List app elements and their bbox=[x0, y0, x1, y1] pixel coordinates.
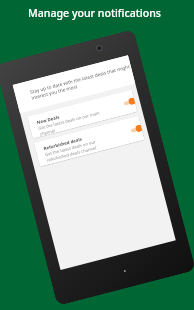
button[interactable]: New Deals bbox=[27, 89, 137, 139]
staticText: Get the latest deals on our refurbished … bbox=[45, 133, 121, 163]
button[interactable]: Notification toggle bbox=[129, 124, 142, 134]
button[interactable]: Stay up to date with the latest deals th… bbox=[13, 55, 135, 113]
staticText: Manage your notifications bbox=[28, 6, 161, 20]
staticText: Refurbished deals bbox=[43, 135, 83, 151]
button[interactable]: Refurbished deals bbox=[34, 116, 145, 167]
button[interactable]: Notification toggle bbox=[122, 97, 135, 107]
staticText: New Deals bbox=[36, 114, 60, 125]
staticText: Get the latest deals on our main channel bbox=[38, 107, 114, 137]
staticText: Stay up to date with the latest deals th… bbox=[29, 63, 132, 101]
